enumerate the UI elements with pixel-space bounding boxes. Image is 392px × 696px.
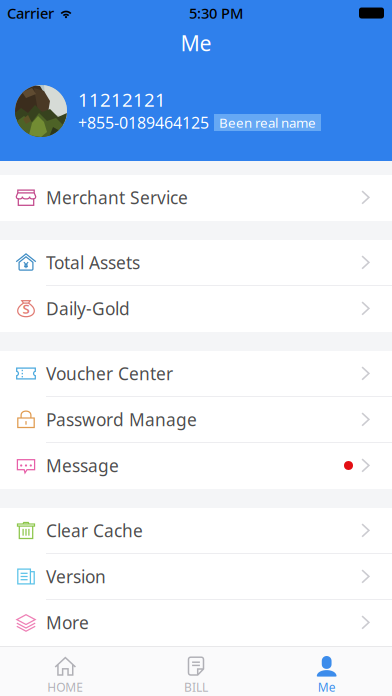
staticText: +855-0189464125 [78, 112, 209, 133]
staticText: Carrier [7, 3, 54, 23]
staticText: BILL [184, 679, 208, 695]
staticText: Daily-Gold [46, 297, 130, 320]
staticText: 11212121 [78, 87, 166, 112]
button[interactable]: More [0, 600, 392, 646]
button[interactable]: Voucher Center [0, 351, 392, 397]
staticText: Password Manage [46, 408, 197, 431]
staticText: HOME [47, 679, 83, 695]
button[interactable]: Me [261, 647, 392, 696]
staticText: Merchant Service [46, 186, 188, 209]
button[interactable]: S [0, 286, 392, 332]
staticText: Me [180, 29, 211, 57]
button[interactable]: Merchant Service [0, 175, 392, 221]
button[interactable]: Message [0, 443, 392, 489]
button[interactable]: Clear Cache [0, 508, 392, 554]
staticText: Total Assets [46, 251, 140, 274]
button[interactable]: Total Assets [0, 240, 392, 286]
staticText: Message [46, 454, 119, 477]
button[interactable]: Version [0, 554, 392, 600]
staticText: Voucher Center [46, 362, 173, 385]
staticText: 5:30 PM [189, 3, 243, 23]
staticText: More [46, 611, 89, 634]
staticText: Me [318, 679, 336, 695]
button[interactable]: HOME [0, 647, 131, 696]
staticText: Been real name [219, 114, 316, 131]
staticText: S [22, 300, 29, 317]
button[interactable]: BILL [131, 647, 261, 696]
button[interactable]: Password Manage [0, 397, 392, 443]
staticText: Clear Cache [46, 519, 143, 542]
staticText: Version [46, 565, 106, 588]
